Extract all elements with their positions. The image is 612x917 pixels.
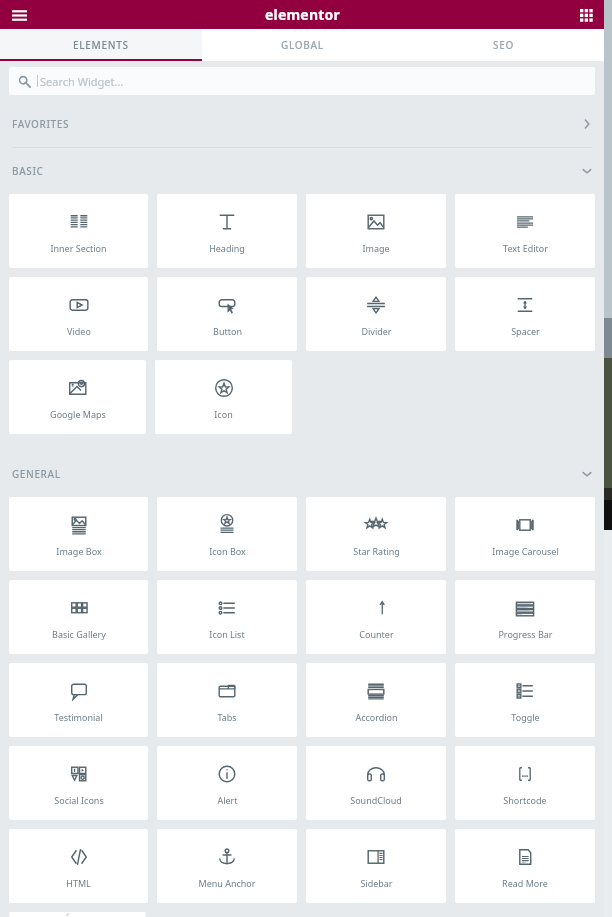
- staticText: Social Icons: [54, 794, 104, 806]
- button[interactable]: Menu: [6, 2, 32, 28]
- button[interactable]: Video: [9, 277, 148, 351]
- button[interactable]: Icon: [155, 360, 292, 434]
- button[interactable]: BASIC: [0, 148, 604, 194]
- button[interactable]: SoundCloud: [306, 746, 446, 820]
- staticText: GLOBAL: [281, 38, 324, 52]
- staticText: Progress Bar: [498, 628, 553, 640]
- button[interactable]: Alert: [157, 746, 297, 820]
- button[interactable]: FAVORITES: [0, 101, 604, 147]
- button[interactable]: Social Icons: [9, 746, 148, 820]
- staticText: Heading: [209, 242, 245, 254]
- staticText: Image Box: [56, 545, 102, 557]
- staticText: Image: [362, 242, 390, 254]
- button[interactable]: Image: [306, 194, 446, 268]
- staticText: SEO: [493, 38, 515, 52]
- button[interactable]: Menu Anchor: [157, 829, 297, 903]
- button[interactable]: Progress Bar: [455, 580, 595, 654]
- button[interactable]: Spacer: [455, 277, 595, 351]
- staticText: FAVORITES: [12, 117, 70, 131]
- button[interactable]: Basic Gallery: [9, 580, 148, 654]
- button[interactable]: HTML: [9, 829, 148, 903]
- staticText: Google Maps: [50, 408, 106, 420]
- staticText: Read More: [502, 877, 548, 889]
- button[interactable]: ELEMENTS: [0, 29, 202, 61]
- staticText: Toggle: [511, 711, 540, 723]
- staticText: Search Widget...: [40, 74, 124, 89]
- button[interactable]: Sidebar: [306, 829, 446, 903]
- button[interactable]: Tabs: [157, 663, 297, 737]
- button[interactable]: Image Carousel: [455, 497, 595, 571]
- button[interactable]: Text Editor: [455, 194, 595, 268]
- staticText: SoundCloud: [350, 794, 402, 806]
- staticText: Shortcode: [503, 794, 547, 806]
- staticText: Star Rating: [353, 545, 400, 557]
- staticText: ELEMENTS: [73, 38, 129, 52]
- staticText: BASIC: [12, 164, 44, 178]
- staticText: Icon Box: [209, 545, 246, 557]
- staticText: Spacer: [511, 325, 540, 337]
- staticText: Alert: [217, 794, 238, 806]
- button[interactable]: SEO: [403, 29, 604, 61]
- staticText: Menu Anchor: [198, 877, 256, 889]
- button[interactable]: Counter: [306, 580, 446, 654]
- button[interactable]: Image Box: [9, 497, 148, 571]
- staticText: GENERAL: [12, 467, 61, 481]
- button[interactable]: Divider: [306, 277, 446, 351]
- button[interactable]: Icon Box: [157, 497, 297, 571]
- button[interactable]: Toggle: [455, 663, 595, 737]
- staticText: Icon: [214, 408, 233, 420]
- button[interactable]: Read More: [455, 829, 595, 903]
- button[interactable]: GLOBAL: [202, 29, 403, 61]
- button[interactable]: Google Maps: [9, 360, 146, 434]
- staticText: Button: [213, 325, 242, 337]
- button[interactable]: Testimonial: [9, 663, 148, 737]
- button[interactable]: GENERAL: [0, 451, 604, 497]
- button[interactable]: Accordion: [306, 663, 446, 737]
- staticText: Tabs: [217, 711, 237, 723]
- staticText: Video: [67, 325, 91, 337]
- button[interactable]: Star Rating: [306, 497, 446, 571]
- button[interactable]: Inner Section: [9, 194, 148, 268]
- button[interactable]: Shortcode: [455, 746, 595, 820]
- button[interactable]: Icon List: [157, 580, 297, 654]
- button[interactable]: Search Widget...: [9, 67, 595, 95]
- staticText: Testimonial: [54, 711, 103, 723]
- button[interactable]: Apps: [574, 3, 598, 27]
- staticText: elementor: [265, 5, 340, 24]
- staticText: Inner Section: [50, 242, 107, 254]
- staticText: Accordion: [355, 711, 398, 723]
- staticText: Text Editor: [503, 242, 548, 254]
- staticText: Divider: [361, 325, 392, 337]
- staticText: Icon List: [209, 628, 245, 640]
- staticText: Sidebar: [360, 877, 393, 889]
- staticText: Basic Gallery: [52, 628, 106, 640]
- button[interactable]: Edit: [9, 912, 146, 917]
- staticText: Counter: [359, 628, 394, 640]
- button[interactable]: Button: [157, 277, 297, 351]
- button[interactable]: Heading: [157, 194, 297, 268]
- staticText: Image Carousel: [492, 545, 559, 557]
- staticText: HTML: [66, 877, 91, 889]
